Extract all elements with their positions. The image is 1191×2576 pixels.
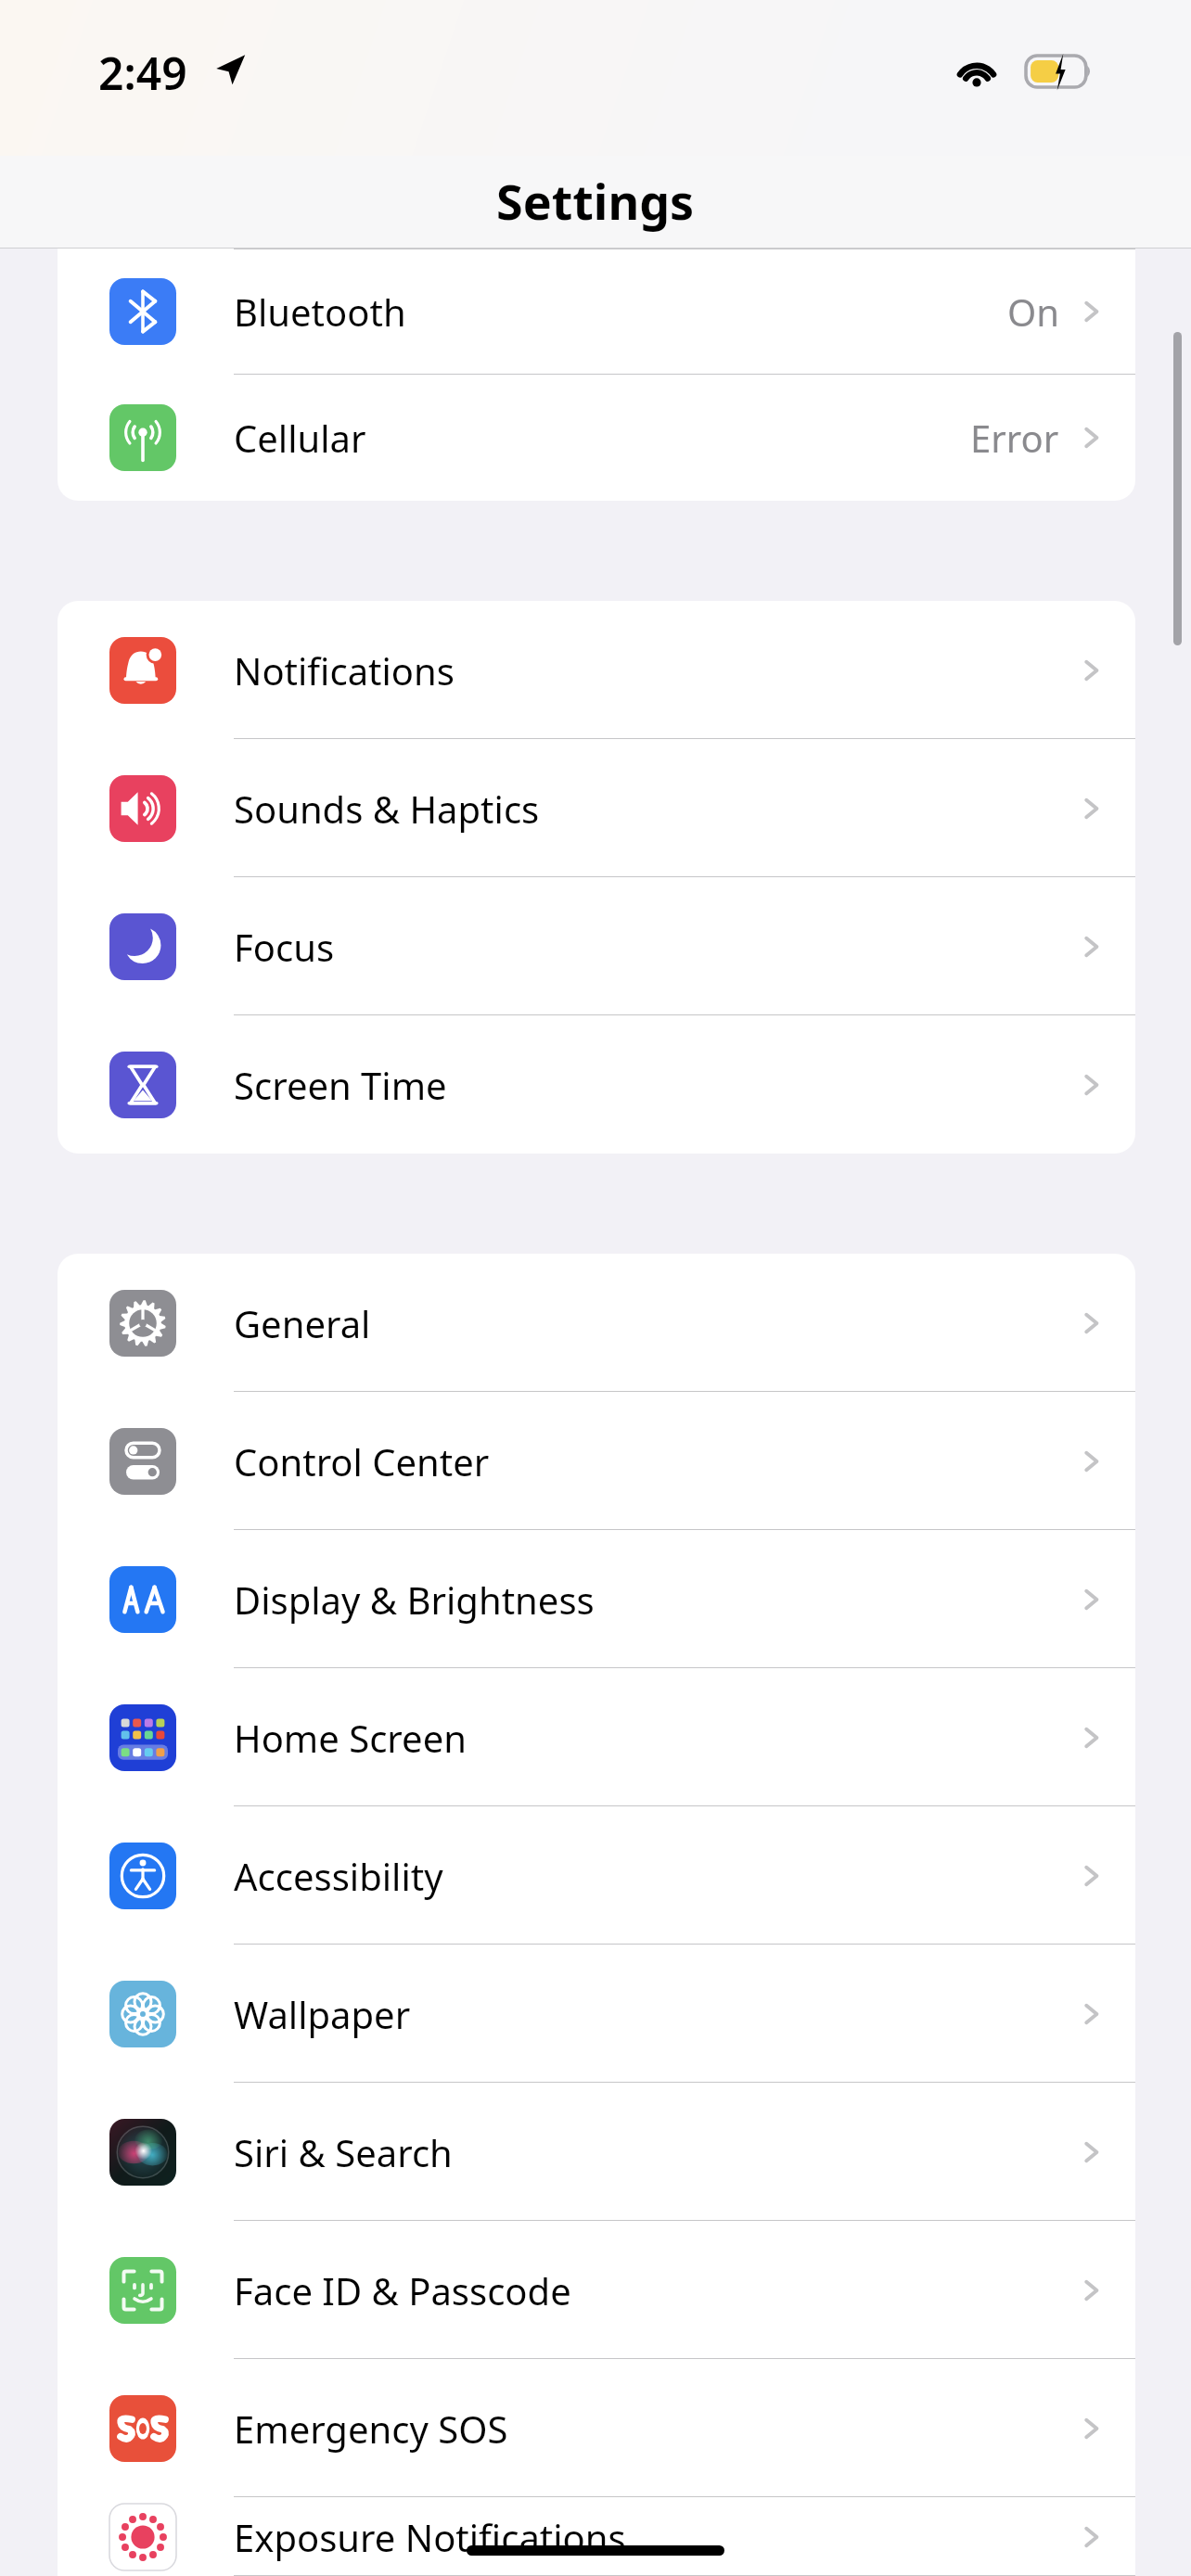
staticText: Exposure Notifications xyxy=(234,2512,626,2562)
staticText: Control Center xyxy=(234,1436,490,1486)
button[interactable]: Siri & Search xyxy=(58,2083,1135,2221)
staticText: 2:49 xyxy=(98,43,187,103)
button[interactable]: Home Screen xyxy=(58,1668,1135,1806)
staticText: Emergency SOS xyxy=(234,2404,508,2454)
button[interactable]: Notifications xyxy=(58,601,1135,739)
staticText: Bluetooth xyxy=(234,287,406,337)
button[interactable]: Emergency SOS xyxy=(58,2359,1135,2497)
staticText: Wallpaper xyxy=(234,1989,411,2039)
staticText: Notifications xyxy=(234,645,455,695)
other: Location in use xyxy=(213,53,247,86)
other: Battery charging xyxy=(1026,56,1093,87)
button[interactable]: Control Center xyxy=(58,1392,1135,1530)
button[interactable]: Screen Time xyxy=(58,1015,1135,1154)
button[interactable]: Cellular xyxy=(58,375,1135,501)
button[interactable]: General xyxy=(58,1254,1135,1392)
button[interactable]: Wallpaper xyxy=(58,1945,1135,2083)
button[interactable]: Sounds & Haptics xyxy=(58,739,1135,877)
button[interactable]: Face ID & Passcode xyxy=(58,2221,1135,2359)
button[interactable]: Accessibility xyxy=(58,1806,1135,1945)
button[interactable]: Exposure Notifications xyxy=(58,2497,1135,2576)
staticText: Cellular xyxy=(234,413,366,463)
staticText: Home Screen xyxy=(234,1713,467,1763)
staticText: Screen Time xyxy=(234,1060,447,1110)
staticText: Accessibility xyxy=(234,1851,443,1901)
staticText: Sounds & Haptics xyxy=(234,784,540,834)
button[interactable]: Display & Brightness xyxy=(58,1530,1135,1668)
staticText: General xyxy=(234,1298,371,1348)
staticText: Display & Brightness xyxy=(234,1575,595,1625)
staticText: Settings xyxy=(496,168,695,234)
other: Wi-Fi xyxy=(955,56,998,87)
staticText: On xyxy=(1007,287,1059,337)
staticText: Face ID & Passcode xyxy=(234,2265,571,2315)
button[interactable]: Bluetooth xyxy=(58,249,1135,375)
staticText: Error xyxy=(970,413,1059,463)
staticText: Focus xyxy=(234,922,335,972)
staticText: Siri & Search xyxy=(234,2127,453,2177)
button[interactable]: Focus xyxy=(58,877,1135,1015)
